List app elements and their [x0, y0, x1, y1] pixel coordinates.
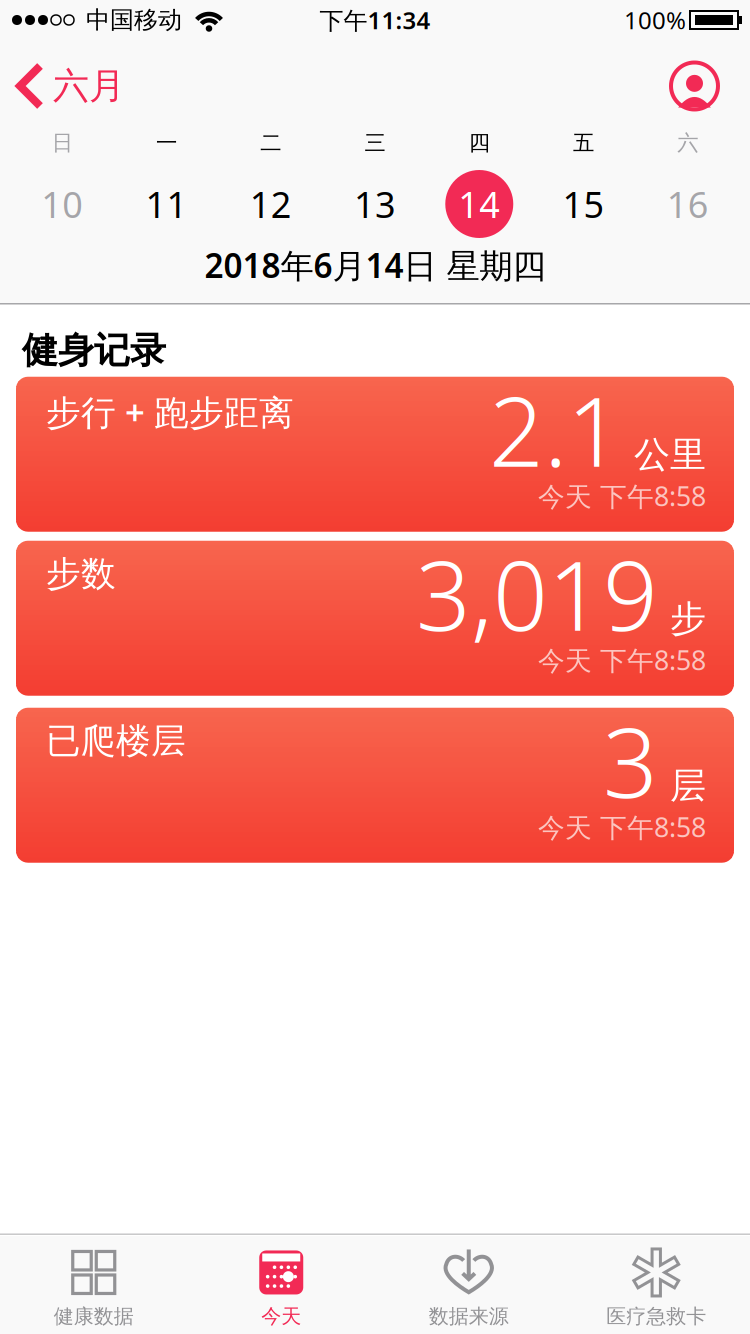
- staticText: 下午11:34: [319, 4, 430, 36]
- button[interactable]: 13: [323, 162, 427, 246]
- button[interactable]: 步数: [16, 541, 734, 696]
- staticText: 日: [52, 130, 73, 156]
- staticText: 步行 + 跑步距离: [46, 389, 294, 435]
- button[interactable]: 16: [636, 162, 740, 246]
- staticText: 健康数据: [54, 1304, 134, 1329]
- staticText: 一: [156, 130, 177, 156]
- staticText: 11: [145, 180, 187, 228]
- staticText: 3,019: [416, 530, 658, 657]
- staticText: 今天: [261, 1304, 301, 1329]
- staticText: 2018年6月14日 星期四: [204, 243, 545, 287]
- staticText: 三: [364, 130, 385, 156]
- button[interactable]: 14: [427, 162, 531, 246]
- staticText: 二: [260, 130, 281, 156]
- staticText: 健身记录: [22, 328, 166, 373]
- staticText: 公里: [634, 433, 706, 477]
- staticText: 步数: [46, 553, 116, 595]
- button[interactable]: 健康数据: [0, 1249, 187, 1329]
- staticText: 已爬楼层: [46, 720, 186, 762]
- staticText: 2.1: [489, 366, 622, 493]
- staticText: 10: [41, 180, 83, 228]
- button[interactable]: 个人资料: [671, 62, 750, 109]
- button[interactable]: 医疗急救卡: [562, 1249, 750, 1329]
- staticText: 3: [603, 697, 658, 824]
- staticText: 六月: [53, 64, 125, 108]
- staticText: 16: [667, 180, 709, 228]
- button[interactable]: 步行 + 跑步距离: [16, 377, 734, 532]
- button[interactable]: 15: [531, 162, 636, 246]
- staticText: 13: [354, 180, 396, 228]
- button[interactable]: 六月: [0, 64, 125, 108]
- button[interactable]: 今天: [187, 1249, 375, 1329]
- staticText: 六: [677, 130, 698, 156]
- staticText: 数据来源: [429, 1304, 509, 1329]
- staticText: 15: [563, 180, 605, 228]
- staticText: 12: [250, 180, 292, 228]
- staticText: 层: [670, 764, 706, 808]
- button[interactable]: 已爬楼层: [16, 708, 734, 863]
- button[interactable]: 数据来源: [375, 1249, 562, 1329]
- staticText: 中国移动: [86, 5, 182, 35]
- staticText: 今天 下午8:58: [538, 478, 706, 514]
- staticText: 医疗急救卡: [606, 1304, 706, 1329]
- button[interactable]: 12: [219, 162, 323, 246]
- staticText: 100%: [624, 4, 686, 36]
- staticText: 四: [469, 130, 490, 156]
- staticText: 今天 下午8:58: [538, 642, 706, 678]
- button[interactable]: 10: [10, 162, 114, 246]
- button[interactable]: 11: [114, 162, 219, 246]
- staticText: 五: [573, 130, 594, 156]
- staticText: 今天 下午8:58: [538, 809, 706, 845]
- staticText: 14: [458, 180, 500, 228]
- staticText: 步: [670, 597, 706, 641]
